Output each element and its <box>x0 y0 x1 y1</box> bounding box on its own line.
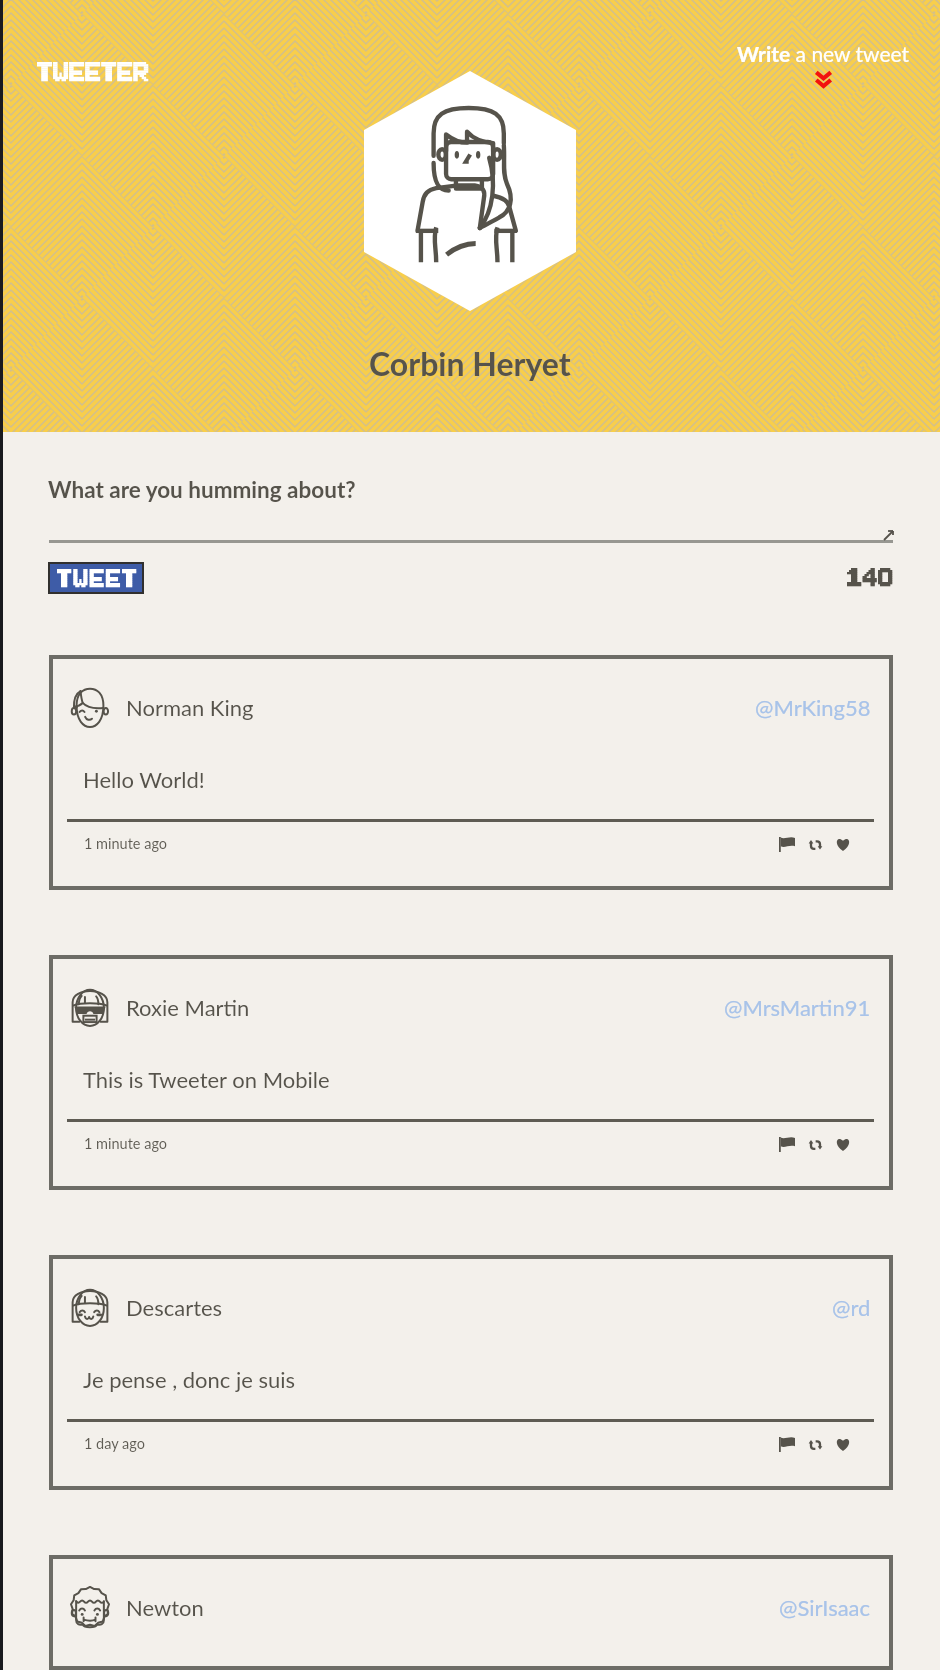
staticText: Hello World! <box>83 766 205 792</box>
staticText: @SirIsaac <box>779 1594 871 1620</box>
button[interactable]: Like <box>831 1432 855 1456</box>
button[interactable]: Retweet <box>803 832 827 856</box>
button[interactable]: Write a new tweet <box>737 41 910 90</box>
staticText: This is Tweeter on Mobile <box>83 1066 330 1092</box>
button[interactable]: Descartes <box>49 1255 893 1490</box>
button[interactable]: Retweet <box>803 1432 827 1456</box>
staticText: 1 minute ago <box>84 835 168 852</box>
staticText: Roxie Martin <box>126 994 250 1020</box>
staticText: @MrsMartin91 <box>724 994 871 1020</box>
staticText: Newton <box>126 1594 204 1620</box>
staticText: @rd <box>832 1294 871 1320</box>
button[interactable]: Norman King <box>49 655 893 890</box>
button[interactable]: Retweet <box>803 1132 827 1156</box>
button[interactable] <box>30 55 155 89</box>
button[interactable]: Like <box>831 1132 855 1156</box>
staticText: 1 minute ago <box>84 1135 168 1152</box>
staticText: Descartes <box>126 1294 223 1320</box>
button[interactable]: Newton <box>49 1555 893 1670</box>
button[interactable]: Report tweet <box>775 1432 799 1456</box>
staticText: Norman King <box>126 694 254 720</box>
staticText: What are you humming about? <box>48 476 356 503</box>
staticText: 1 day ago <box>84 1435 145 1452</box>
button[interactable]: Report tweet <box>775 1132 799 1156</box>
button[interactable]: Like <box>831 832 855 856</box>
staticText: Je pense , donc je suis <box>83 1366 296 1392</box>
staticText: Corbin Heryet <box>369 344 571 382</box>
button[interactable] <box>50 564 142 592</box>
button[interactable]: Roxie Martin <box>49 955 893 1190</box>
button[interactable]: Report tweet <box>775 832 799 856</box>
staticText: Write a new tweet <box>737 41 910 66</box>
staticText: @MrKing58 <box>755 694 871 720</box>
